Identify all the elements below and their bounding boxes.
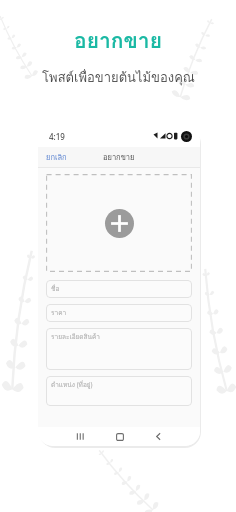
staticText: อยากขาย <box>103 151 135 163</box>
button[interactable]: Add photo <box>46 174 192 272</box>
staticText: รายละเอียดสินค้า <box>51 332 100 342</box>
button[interactable]: ยกเลิก <box>38 149 73 165</box>
staticText: 4:19 <box>49 131 65 142</box>
button[interactable]: ตำแหน่ง (ที่อยู่) <box>46 376 192 406</box>
button[interactable]: Back <box>139 432 178 441</box>
button[interactable]: Recent apps <box>60 432 100 441</box>
button[interactable]: ราคา <box>46 304 192 322</box>
button[interactable]: ชื่อ <box>46 280 192 298</box>
staticText: ยกเลิก <box>46 151 67 163</box>
button[interactable]: รายละเอียดสินค้า <box>46 328 192 370</box>
staticText: ราคา <box>51 308 67 318</box>
staticText: โพสต์เพื่อขายต้นไม้ของคุณ <box>42 67 195 88</box>
staticText: ตำแหน่ง (ที่อยู่) <box>51 380 93 390</box>
button[interactable]: Home <box>100 433 139 441</box>
staticText: อยากขาย <box>74 24 162 57</box>
staticText: ชื่อ <box>51 284 60 294</box>
